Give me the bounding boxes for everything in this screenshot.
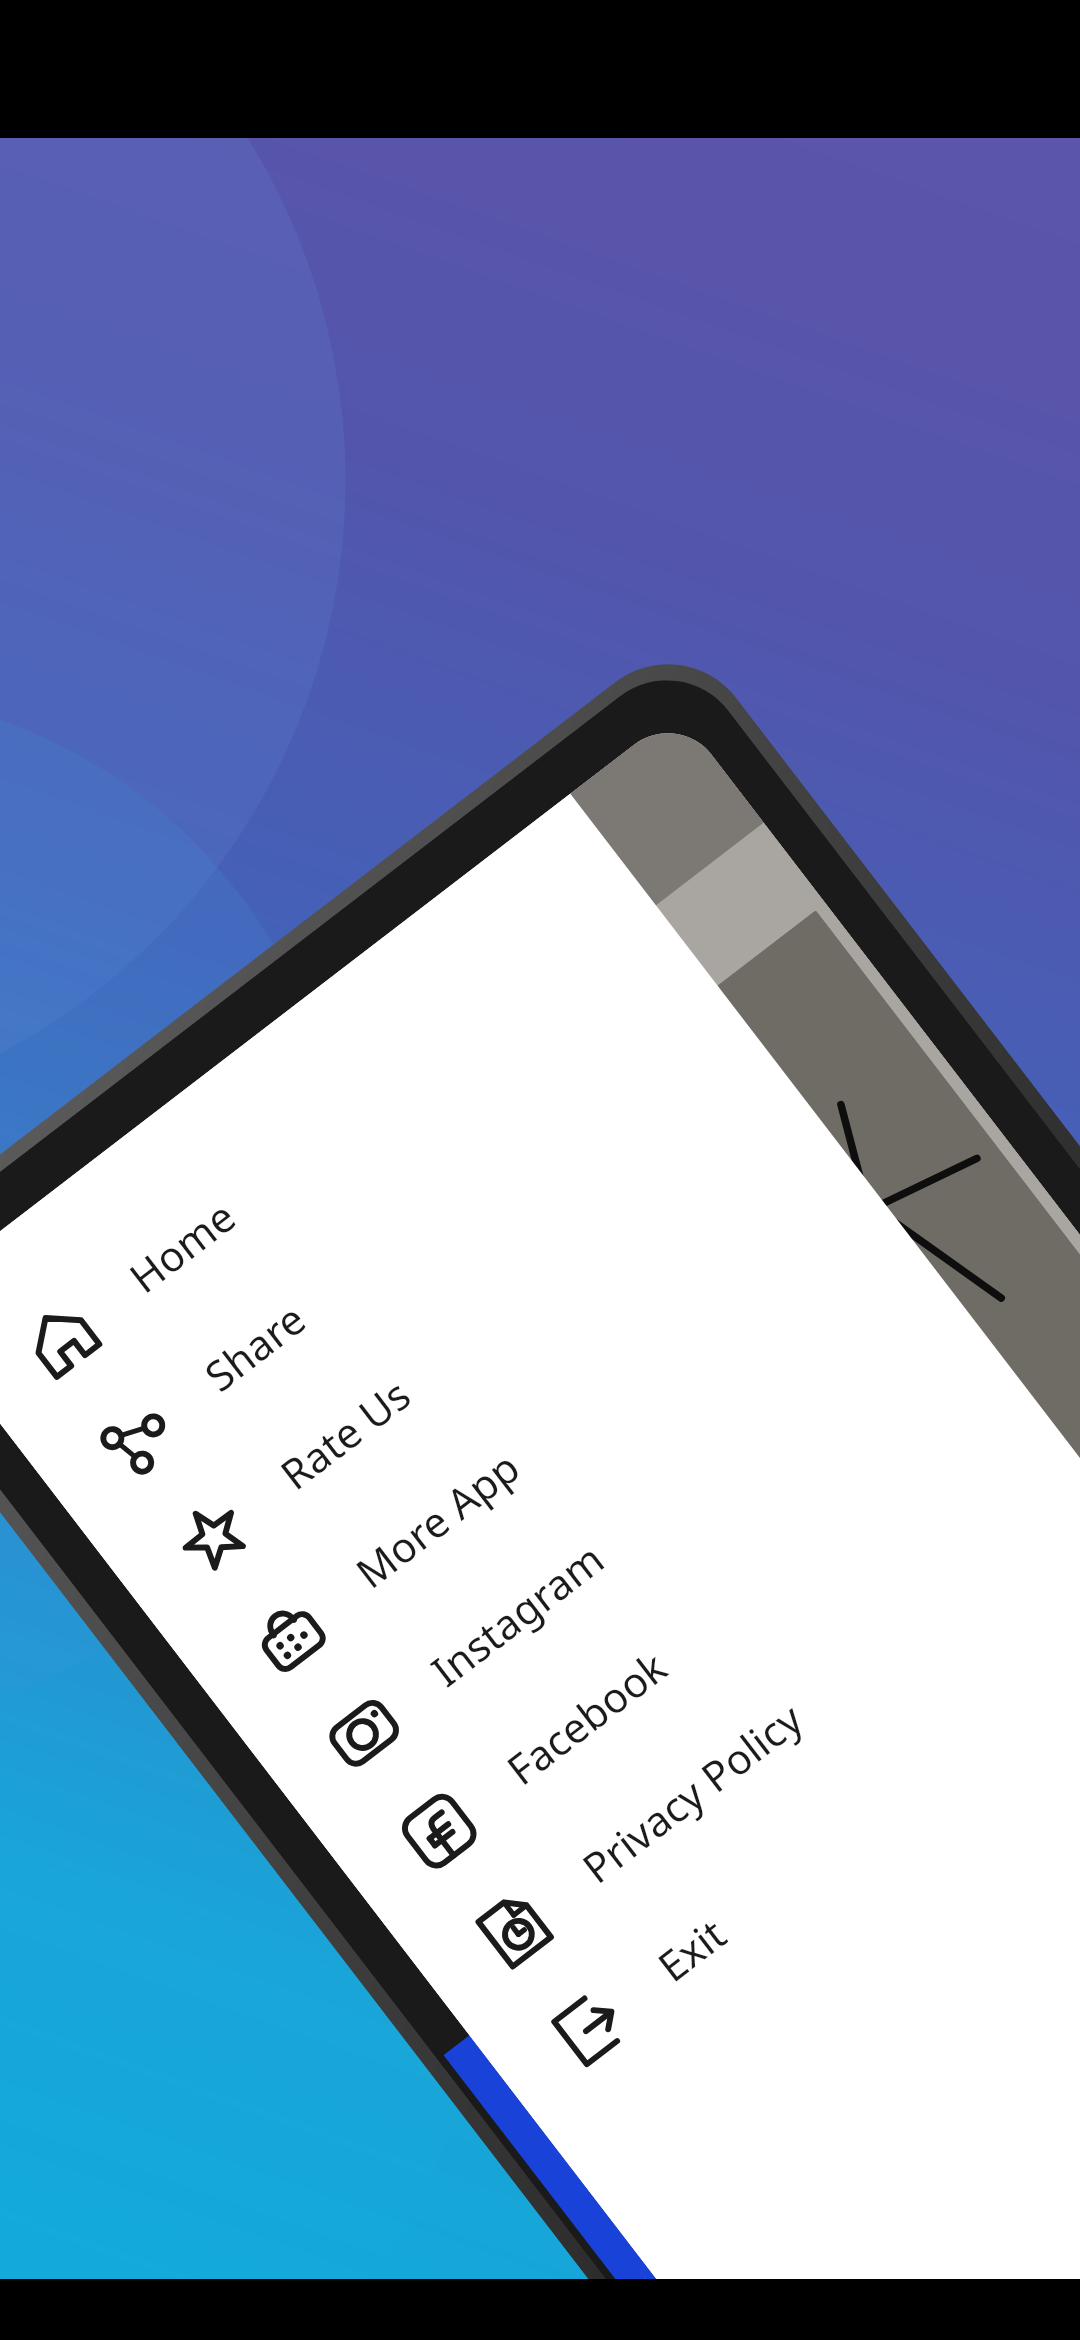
button[interactable]: More App <box>170 1137 909 1744</box>
button[interactable]: Privacy Policy <box>397 1432 1080 2039</box>
button[interactable]: Home <box>0 842 683 1449</box>
staticText: Privacy Policy <box>571 1690 814 1896</box>
other: More App <box>241 1587 335 1681</box>
staticText: Share <box>193 1290 317 1404</box>
other: Facebook <box>392 1784 486 1878</box>
other: Rate Us <box>166 1489 260 1583</box>
button[interactable]: Share <box>19 940 758 1548</box>
button[interactable] <box>455 1711 1080 2279</box>
button[interactable]: Exit <box>472 1531 1080 2138</box>
other: Instagram <box>317 1686 411 1780</box>
other: Privacy Policy <box>468 1883 562 1976</box>
staticText: Facebook <box>495 1638 678 1797</box>
staticText: More App <box>344 1439 531 1601</box>
other: Share <box>90 1391 184 1485</box>
staticText: Home <box>118 1188 247 1306</box>
button[interactable]: Rate Us <box>95 1039 834 1646</box>
button[interactable]: Facebook <box>321 1334 1060 1941</box>
button[interactable] <box>64 1202 818 1985</box>
button[interactable] <box>835 1419 1080 2192</box>
other: Exit <box>543 1981 637 2075</box>
staticText: Exit <box>646 1906 737 1994</box>
staticText: Rate Us <box>269 1366 422 1502</box>
staticText: Instagram <box>420 1530 616 1699</box>
other: Home <box>15 1292 109 1386</box>
button[interactable] <box>444 910 1080 1694</box>
button[interactable]: Instagram <box>246 1235 985 1843</box>
